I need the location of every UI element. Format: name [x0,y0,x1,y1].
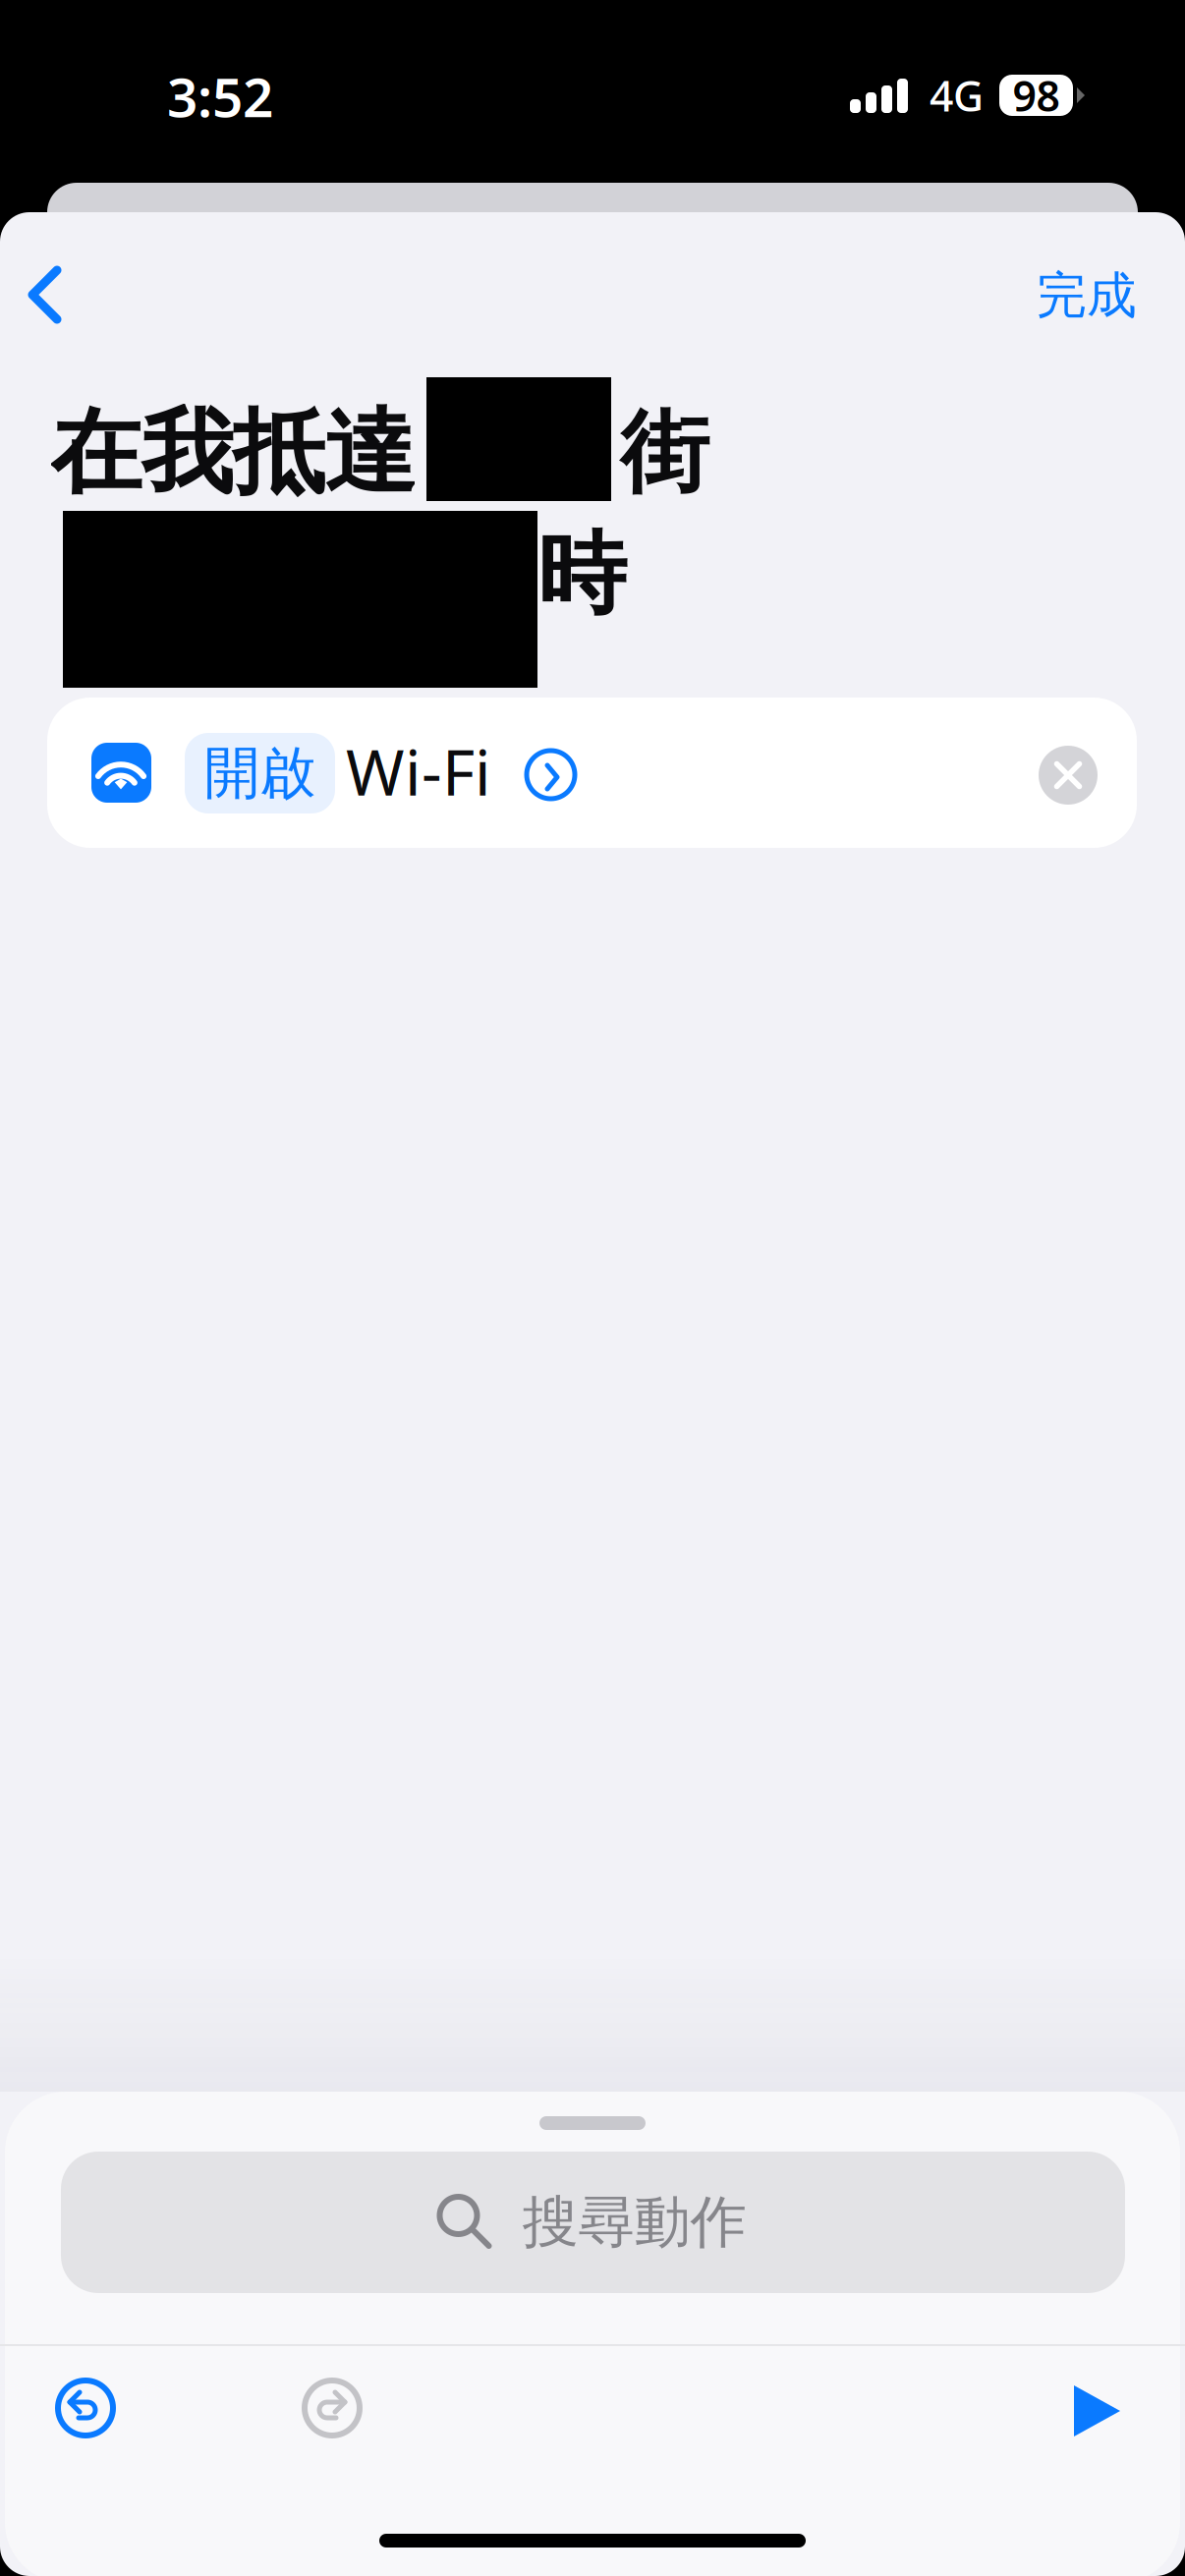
button[interactable]: 搜尋動作 [61,2152,1125,2293]
staticText: 在我抵達 [50,397,416,509]
staticText: 時 [537,520,627,629]
button[interactable]: 完成 [1008,239,1165,353]
staticText: 完成 [1037,265,1137,326]
staticText: 街 [620,398,709,508]
staticText: 開啟 [204,739,316,808]
staticText: Wi-Fi [346,729,491,813]
button[interactable]: Back [0,236,118,354]
button[interactable]: 開啟 [47,698,1137,848]
staticText: 98 [1013,67,1060,123]
button[interactable]: Undo [30,2353,141,2463]
staticText: 搜尋動作 [522,2188,746,2257]
button[interactable]: Redo [277,2353,387,2463]
button[interactable]: Run shortcut [1048,2360,1160,2472]
staticText: 4G [930,67,984,123]
staticText: 3:52 [167,61,273,132]
